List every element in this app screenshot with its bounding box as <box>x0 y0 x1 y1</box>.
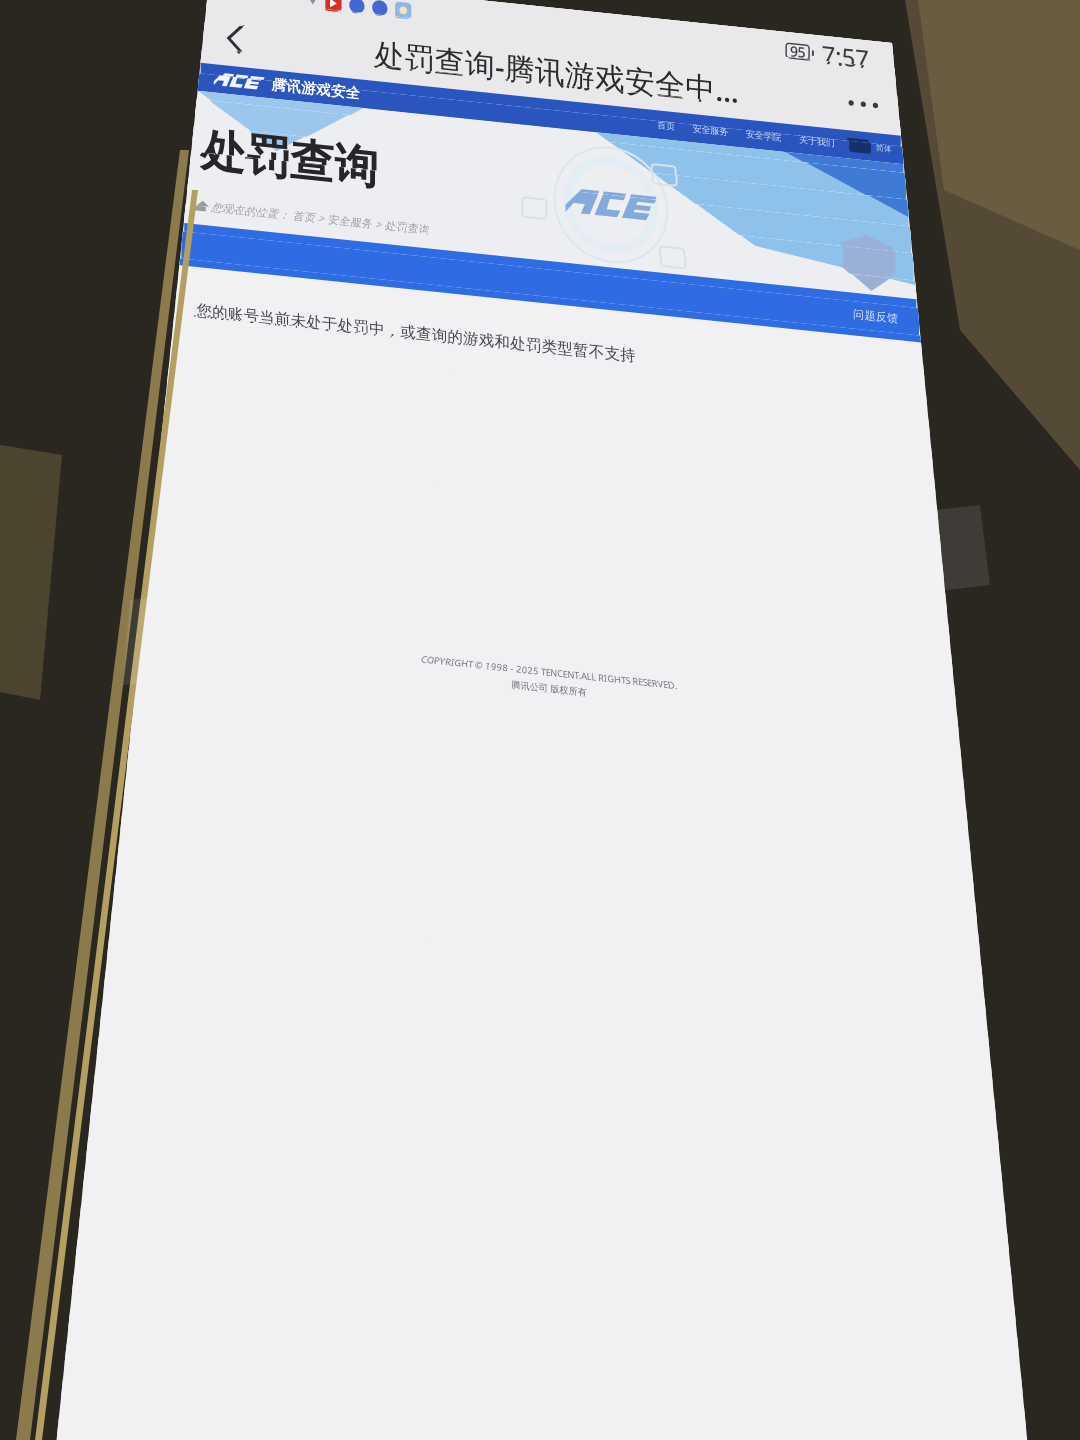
button[interactable]: 安全服务 <box>493 94 547 123</box>
button[interactable]: 安全学院 <box>547 94 601 123</box>
button[interactable]: 问题反馈 <box>652 254 716 295</box>
button[interactable]: 首页 <box>457 94 493 123</box>
button[interactable]: 问题反馈 <box>652 254 716 295</box>
button[interactable]: 首页 <box>457 94 493 123</box>
button[interactable]: 关于我们 <box>601 94 655 123</box>
button[interactable]: 安全服务 <box>493 94 547 123</box>
button[interactable]: 关于我们 <box>601 94 655 123</box>
button[interactable]: More options <box>644 39 716 93</box>
button[interactable]: More options <box>644 39 716 93</box>
button[interactable]: 安全学院 <box>547 94 601 123</box>
button[interactable]: 安全学院 <box>547 94 601 123</box>
button[interactable]: 关于我们 <box>601 94 655 123</box>
button[interactable]: 关于我们 <box>601 94 655 123</box>
button[interactable]: 问题反馈 <box>652 254 716 295</box>
button[interactable]: 关于我们 <box>601 94 655 123</box>
button[interactable]: 首页 <box>457 94 493 123</box>
button[interactable]: 关于我们 <box>601 94 655 123</box>
button[interactable]: 问题反馈 <box>652 254 716 295</box>
button[interactable]: 关于我们 <box>601 94 655 123</box>
button[interactable]: More options <box>644 39 716 93</box>
button[interactable]: 问题反馈 <box>652 254 716 295</box>
button[interactable]: More options <box>644 39 716 93</box>
button[interactable]: 安全学院 <box>547 94 601 123</box>
button[interactable]: More options <box>644 39 716 93</box>
button[interactable]: 安全学院 <box>547 94 601 123</box>
button[interactable]: More options <box>644 39 716 93</box>
button[interactable]: 安全服务 <box>493 94 547 123</box>
button[interactable]: More options <box>644 39 716 93</box>
button[interactable]: More options <box>644 39 716 93</box>
button[interactable]: 首页 <box>457 94 493 123</box>
button[interactable]: 安全学院 <box>547 94 601 123</box>
button[interactable]: 安全学院 <box>547 94 601 123</box>
button[interactable]: 安全学院 <box>547 94 601 123</box>
button[interactable]: More options <box>644 39 716 93</box>
button[interactable]: 关于我们 <box>601 94 655 123</box>
button[interactable]: 首页 <box>457 94 493 123</box>
button[interactable]: 问题反馈 <box>652 254 716 295</box>
button[interactable]: More options <box>644 39 716 93</box>
button[interactable]: 首页 <box>457 94 493 123</box>
button[interactable]: 安全服务 <box>493 94 547 123</box>
button[interactable]: 安全学院 <box>547 94 601 123</box>
button[interactable]: More options <box>644 39 716 93</box>
button[interactable]: 首页 <box>457 94 493 123</box>
button[interactable]: 安全学院 <box>547 94 601 123</box>
button[interactable]: More options <box>644 39 716 93</box>
button[interactable]: 安全学院 <box>547 94 601 123</box>
button[interactable]: 安全服务 <box>493 94 547 123</box>
button[interactable]: 关于我们 <box>601 94 655 123</box>
button[interactable]: 安全学院 <box>547 94 601 123</box>
button[interactable]: 安全服务 <box>493 94 547 123</box>
button[interactable]: 安全学院 <box>547 94 601 123</box>
button[interactable]: 安全服务 <box>493 94 547 123</box>
button[interactable]: 问题反馈 <box>652 254 716 295</box>
button[interactable]: 问题反馈 <box>652 254 716 295</box>
button[interactable]: 问题反馈 <box>652 254 716 295</box>
button[interactable]: 安全学院 <box>547 94 601 123</box>
button[interactable]: 关于我们 <box>601 94 655 123</box>
button[interactable]: 安全服务 <box>493 94 547 123</box>
button[interactable]: 关于我们 <box>601 94 655 123</box>
button[interactable]: 安全服务 <box>493 94 547 123</box>
button[interactable]: 首页 <box>457 94 493 123</box>
button[interactable]: 关于我们 <box>601 94 655 123</box>
button[interactable]: 首页 <box>457 94 493 123</box>
button[interactable]: 安全服务 <box>493 94 547 123</box>
button[interactable]: 首页 <box>457 94 493 123</box>
button[interactable]: More options <box>644 39 716 93</box>
button[interactable]: 首页 <box>457 94 493 123</box>
button[interactable]: 首页 <box>457 94 493 123</box>
button[interactable]: 问题反馈 <box>652 254 716 295</box>
button[interactable]: 问题反馈 <box>652 254 716 295</box>
button[interactable]: 关于我们 <box>601 94 655 123</box>
button[interactable]: 安全服务 <box>493 94 547 123</box>
button[interactable]: 关于我们 <box>601 94 655 123</box>
button[interactable]: 问题反馈 <box>652 254 716 295</box>
button[interactable]: 问题反馈 <box>652 254 716 295</box>
button[interactable]: 安全服务 <box>493 94 547 123</box>
button[interactable]: 关于我们 <box>601 94 655 123</box>
button[interactable]: 首页 <box>457 94 493 123</box>
button[interactable]: 安全学院 <box>547 94 601 123</box>
button[interactable]: More options <box>644 39 716 93</box>
button[interactable]: 问题反馈 <box>652 254 716 295</box>
button[interactable]: 安全学院 <box>547 94 601 123</box>
button[interactable]: 问题反馈 <box>652 254 716 295</box>
button[interactable]: 关于我们 <box>601 94 655 123</box>
button[interactable]: More options <box>644 39 716 93</box>
